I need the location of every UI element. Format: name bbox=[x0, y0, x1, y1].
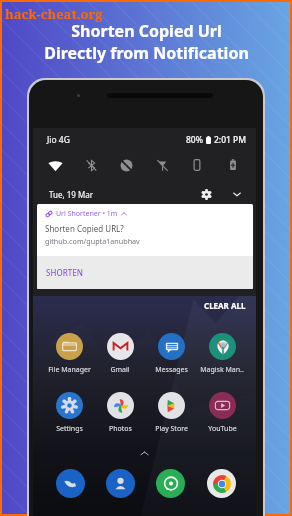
staticText: 2:01 PM bbox=[214, 134, 247, 146]
button[interactable]: Battery saver bbox=[221, 153, 245, 177]
button[interactable]: Do not disturb bbox=[114, 153, 138, 177]
button[interactable]: WhatsApp bbox=[156, 469, 185, 498]
button[interactable]: SHORTEN bbox=[37, 256, 253, 289]
button[interactable]: Magisk Man.. bbox=[197, 333, 247, 375]
staticText: File Manager bbox=[48, 365, 91, 375]
button[interactable]: Settings bbox=[198, 186, 214, 202]
staticText: Photos bbox=[109, 424, 132, 434]
button[interactable]: Gmail bbox=[95, 333, 145, 375]
staticText: Messages bbox=[155, 365, 188, 375]
button[interactable]: Wi-Fi bbox=[43, 153, 67, 177]
staticText: github.com/gupta1anubhav bbox=[45, 236, 140, 246]
staticText: 80% bbox=[186, 134, 203, 146]
staticText: Settings bbox=[56, 424, 83, 434]
button[interactable]: Messages bbox=[146, 333, 196, 375]
staticText: Shorten Copied Url bbox=[71, 20, 222, 42]
button[interactable]: Photos bbox=[95, 392, 145, 434]
button[interactable]: Expand bbox=[229, 186, 245, 202]
button[interactable]: YouTube bbox=[197, 392, 247, 434]
staticText: Jio 4G bbox=[47, 134, 70, 146]
button[interactable]: Location off bbox=[150, 153, 174, 177]
button[interactable]: Bluetooth off bbox=[79, 153, 103, 177]
staticText: Play Store bbox=[155, 424, 188, 434]
staticText: Directly from Notification bbox=[44, 42, 249, 64]
button[interactable]: Play Store bbox=[146, 392, 196, 434]
staticText: Magisk Man.. bbox=[200, 365, 244, 375]
staticText: hack-cheat.org bbox=[5, 5, 103, 23]
button[interactable]: Settings bbox=[44, 392, 94, 434]
staticText: SHORTEN bbox=[46, 267, 83, 278]
button[interactable]: CLEAR ALL bbox=[194, 297, 256, 313]
button[interactable]: Auto rotate bbox=[185, 153, 209, 177]
button[interactable]: Contacts bbox=[106, 469, 135, 498]
button[interactable]: File Manager bbox=[44, 333, 94, 375]
staticText: Tue, 19 Mar bbox=[49, 189, 94, 200]
button[interactable]: Phone bbox=[56, 469, 85, 498]
staticText: Shorten Copied URL? bbox=[45, 223, 124, 234]
staticText: CLEAR ALL bbox=[204, 300, 246, 310]
staticText: Gmail bbox=[110, 365, 130, 375]
button[interactable]: Url Shortener • 1m bbox=[37, 204, 253, 289]
staticText: Url Shortener • 1m bbox=[56, 209, 118, 219]
staticText: YouTube bbox=[208, 424, 237, 434]
button[interactable]: Chrome bbox=[207, 469, 236, 498]
